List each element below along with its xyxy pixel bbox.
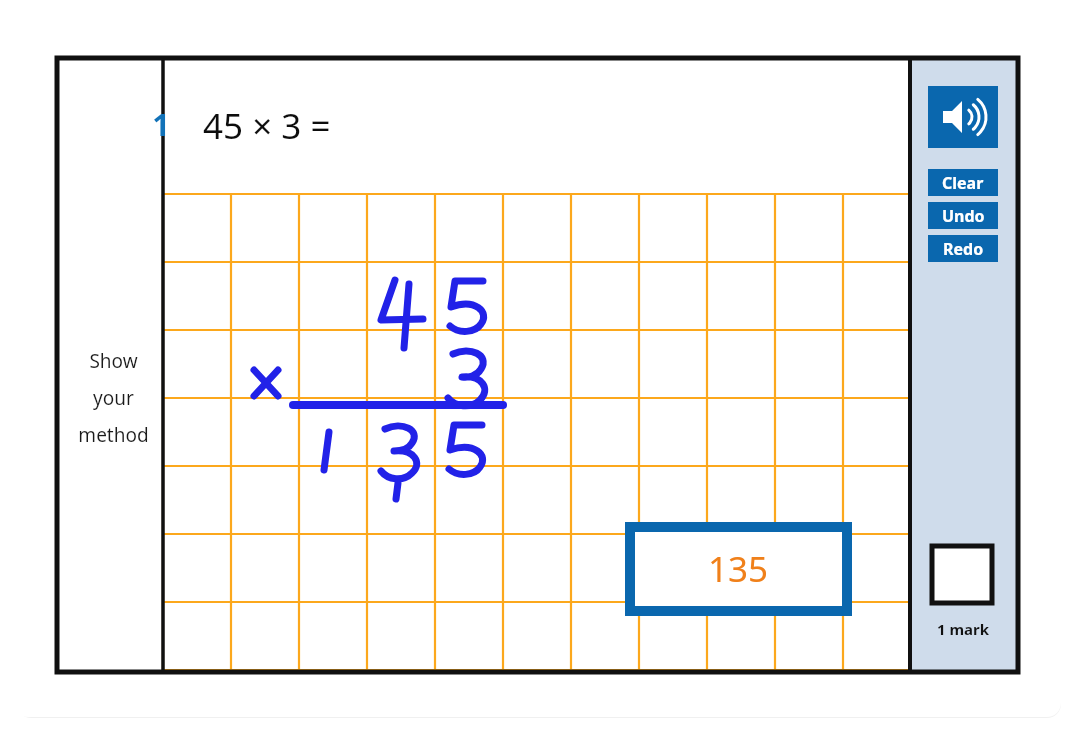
staticText: Clear — [942, 172, 984, 194]
staticText: your — [93, 385, 134, 411]
button[interactable]: 135 — [630, 527, 847, 611]
staticText: 135 — [708, 545, 769, 593]
staticText: 1 — [149, 103, 173, 145]
staticText: Redo — [943, 238, 984, 260]
staticText: Show — [89, 348, 138, 374]
staticText: method — [78, 422, 149, 448]
button[interactable]: Undo — [928, 202, 998, 229]
staticText: 1 mark — [928, 619, 998, 639]
button[interactable]: Play audio — [928, 86, 998, 148]
button[interactable]: Clear — [928, 169, 998, 196]
staticText: 45 × 3 = — [203, 102, 331, 150]
button[interactable]: Redo — [928, 235, 998, 262]
staticText: Undo — [942, 205, 985, 227]
